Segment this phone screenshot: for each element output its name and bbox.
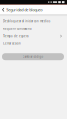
button[interactable]: Cerrar sesión: [0, 40, 67, 47]
button[interactable]: Desbloquear al iniciar con medios: [0, 18, 67, 25]
button[interactable]: Tiempo de espera: [0, 32, 67, 40]
staticText: Seguridad de bloqueo: [6, 7, 42, 12]
button[interactable]: Seguridad de bloqueo: [0, 5, 67, 15]
staticText: Tiempo de espera: [3, 34, 28, 38]
staticText: Desbloquear al iniciar con medios: [3, 19, 50, 23]
staticText: Requerir contraseña: [3, 27, 31, 30]
button[interactable]: Cambiar código: [2, 53, 64, 60]
staticText: Cerrar sesión: [3, 42, 21, 45]
staticText: Cambiar código: [22, 55, 43, 58]
button[interactable]: Requerir contraseña: [0, 25, 67, 32]
